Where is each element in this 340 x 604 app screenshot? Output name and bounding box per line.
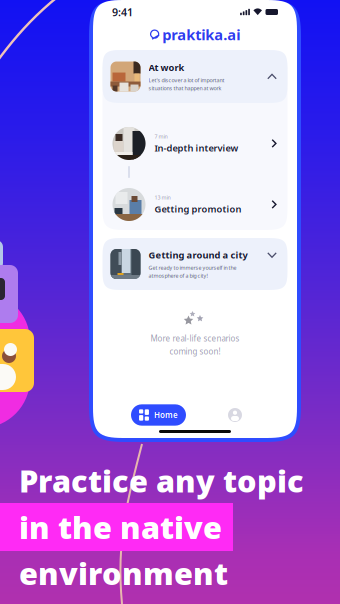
staticText: situations that happen at work bbox=[148, 85, 221, 92]
staticText: coming soon! bbox=[169, 346, 220, 357]
staticText: atmosphere of a big city! bbox=[148, 272, 207, 279]
staticText: Getting around a city bbox=[148, 249, 247, 261]
button[interactable]: Home bbox=[131, 404, 186, 426]
staticText: Get ready to immerse yourself in the bbox=[148, 264, 236, 271]
staticText: 13 min bbox=[154, 194, 170, 201]
staticText: At work bbox=[148, 61, 184, 74]
staticText: Practice any topic bbox=[19, 460, 304, 501]
button[interactable]: Getting around a city bbox=[102, 238, 287, 290]
staticText: in the native bbox=[19, 507, 222, 547]
button[interactable]: At work bbox=[102, 50, 287, 103]
staticText: Home bbox=[154, 410, 178, 420]
staticText: praktika.ai bbox=[162, 25, 240, 44]
staticText: Getting promotion bbox=[154, 203, 241, 215]
staticText: 7 min bbox=[154, 133, 167, 140]
button[interactable]: 13 min bbox=[102, 178, 287, 230]
staticText: 9:41 bbox=[112, 5, 133, 19]
staticText: environment bbox=[19, 553, 228, 593]
staticText: Let's discover a lot of important bbox=[148, 77, 224, 84]
staticText: More real-life scenarios bbox=[150, 333, 239, 344]
button[interactable]: 7 min bbox=[102, 103, 287, 178]
staticText: In-depth interview bbox=[154, 142, 238, 154]
button[interactable]: Profile bbox=[222, 402, 248, 428]
